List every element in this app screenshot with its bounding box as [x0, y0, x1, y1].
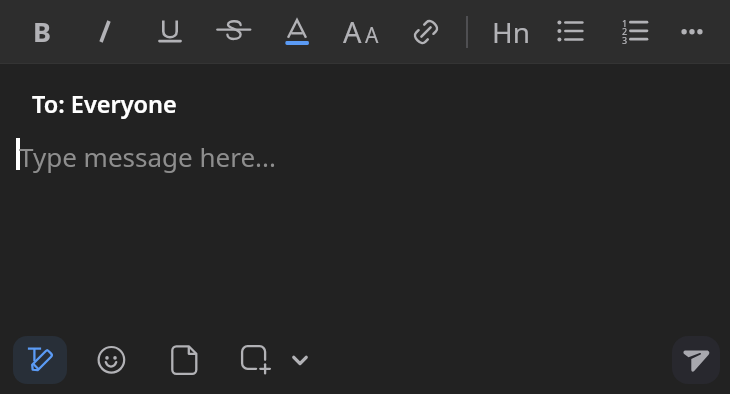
staticText: B — [33, 13, 51, 50]
staticText: 3 — [622, 34, 628, 46]
button[interactable]: Bulleted list — [549, 10, 593, 54]
button[interactable]: Numbered list — [614, 10, 658, 54]
button[interactable]: Format text — [13, 336, 67, 384]
staticText: Type message here... — [19, 139, 277, 174]
button[interactable]: More options — [670, 10, 714, 54]
button[interactable]: Text color — [275, 10, 319, 54]
button[interactable]: Heading — [486, 10, 530, 54]
button[interactable]: Bold — [20, 9, 64, 53]
staticText: Hn — [492, 13, 531, 51]
staticText: 1 — [622, 17, 628, 29]
staticText: 2 — [622, 25, 628, 37]
staticText: A — [343, 12, 362, 51]
button[interactable]: Font size — [340, 10, 384, 54]
button[interactable]: Add — [234, 338, 278, 382]
staticText: To: Everyone — [32, 88, 177, 120]
button[interactable]: Insert link — [404, 10, 448, 54]
button[interactable]: More — [278, 338, 322, 382]
staticText: A — [365, 21, 379, 50]
button[interactable]: Strikethrough — [211, 10, 255, 54]
button[interactable]: Emoji — [89, 338, 133, 382]
button[interactable]: Attach file — [162, 338, 206, 382]
button[interactable]: Send — [672, 336, 720, 384]
button[interactable]: Italic — [83, 10, 127, 54]
button[interactable]: Underline — [147, 10, 191, 54]
